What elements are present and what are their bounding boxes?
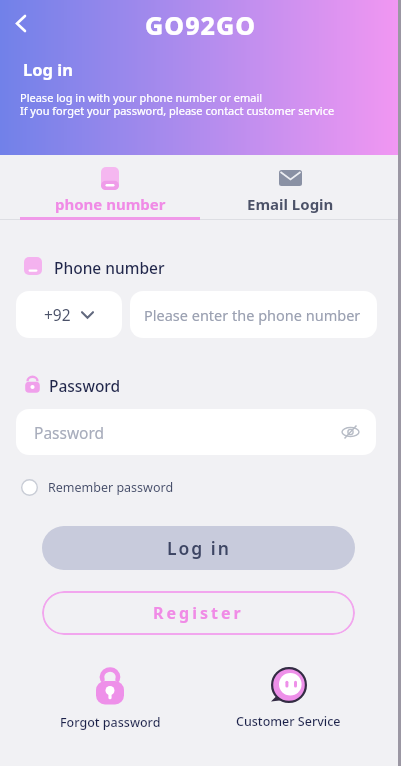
staticText: phone number bbox=[55, 194, 166, 214]
staticText: Phone number bbox=[54, 257, 165, 275]
button[interactable]: Forgot password bbox=[35, 666, 185, 731]
staticText: Please log in with your phone number or … bbox=[20, 90, 263, 105]
staticText: Log in bbox=[167, 536, 231, 560]
button[interactable]: Password bbox=[16, 409, 376, 455]
staticText: Register bbox=[153, 602, 244, 624]
button[interactable]: Customer Service bbox=[213, 666, 363, 730]
button[interactable]: Please enter the phone number bbox=[130, 291, 377, 338]
staticText: Remember password bbox=[48, 479, 174, 496]
button[interactable]: Register bbox=[42, 591, 355, 635]
staticText: Customer Service bbox=[236, 713, 341, 730]
staticText: Please enter the phone number bbox=[144, 305, 361, 325]
staticText: If you forget your password, please cont… bbox=[20, 103, 335, 118]
staticText: Password bbox=[49, 375, 121, 393]
button[interactable]: phone number bbox=[20, 162, 200, 219]
staticText: GO92GO bbox=[145, 8, 257, 42]
staticText: Password bbox=[34, 422, 105, 443]
staticText: Email Login bbox=[247, 194, 334, 214]
button[interactable] bbox=[8, 8, 36, 36]
staticText: Log in bbox=[23, 58, 73, 80]
staticText: Forgot password bbox=[60, 714, 161, 731]
button[interactable]: +92 bbox=[16, 291, 122, 338]
staticText: +92 bbox=[44, 304, 71, 325]
button[interactable]: Remember password bbox=[21, 478, 174, 496]
button[interactable]: Email Login bbox=[200, 162, 381, 219]
button[interactable]: Log in bbox=[42, 526, 355, 570]
